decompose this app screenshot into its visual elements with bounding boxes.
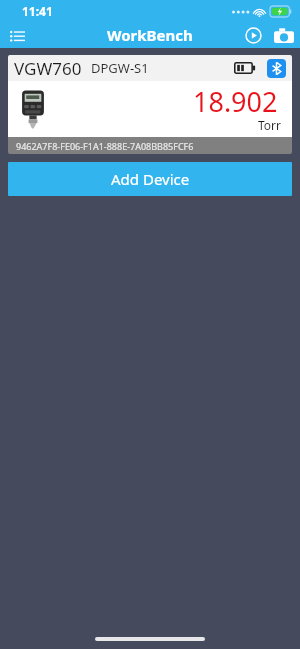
button[interactable]: Menu	[0, 22, 34, 48]
staticText: 9462A7F8-FE06-F1A1-888E-7A08BB85FCF6	[16, 140, 194, 152]
staticText: WorkBench	[107, 25, 193, 45]
button[interactable]: Add Device	[8, 162, 292, 196]
button[interactable]: VGW760	[8, 55, 292, 154]
button[interactable]: Play	[238, 22, 268, 48]
staticText: VGW760	[14, 57, 82, 80]
staticText: 18.902	[193, 83, 278, 120]
staticText: DPGW-S1	[91, 59, 149, 77]
button[interactable]: Camera	[268, 22, 300, 48]
staticText: 11:41	[22, 3, 53, 19]
staticText: Torr	[258, 117, 282, 133]
staticText: Add Device	[111, 169, 190, 189]
